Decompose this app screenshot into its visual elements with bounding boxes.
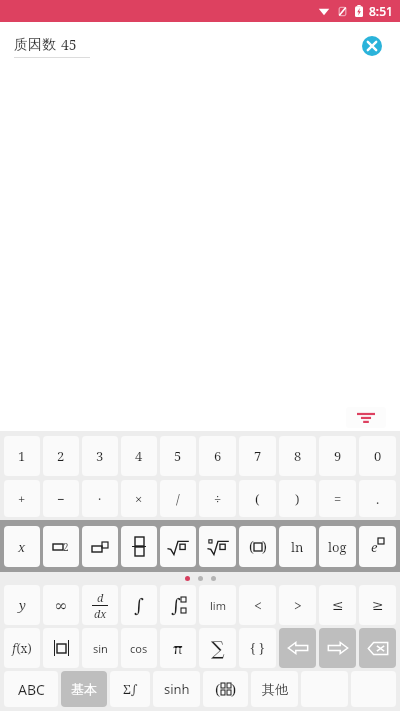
button[interactable]: < (239, 585, 276, 625)
button[interactable]: 其他 (251, 671, 298, 707)
staticText: 0 (374, 447, 382, 465)
button[interactable]: Close (355, 29, 389, 63)
button[interactable]: + (4, 480, 40, 517)
button[interactable]: ∫ (121, 585, 157, 625)
staticText: ≥ (372, 597, 384, 613)
button[interactable]: ÷ (199, 480, 236, 517)
staticText: 45 (61, 35, 77, 54)
staticText: · (98, 490, 102, 508)
button[interactable] (82, 526, 118, 567)
staticText: 2 (63, 540, 69, 554)
button[interactable] (43, 628, 79, 668)
button[interactable]: Σ∫ (110, 671, 150, 707)
staticText: dx (94, 606, 107, 621)
staticText: − (57, 490, 65, 508)
staticText: 𝑓(x) (12, 640, 32, 656)
button[interactable]: ( (203, 671, 248, 707)
staticText: . (376, 490, 380, 508)
button[interactable]: x (4, 526, 40, 567)
staticText: 2 (57, 447, 65, 465)
button[interactable]: { } (239, 628, 276, 668)
button[interactable]: 𝑓(x) (4, 628, 40, 668)
button[interactable]: π (160, 628, 196, 668)
staticText: ( (255, 490, 260, 508)
button[interactable]: lim (199, 585, 236, 625)
button[interactable]: 1 (4, 436, 40, 476)
button[interactable]: 3 (82, 436, 118, 476)
button[interactable]: Move right (319, 628, 356, 668)
button[interactable]: 6 (199, 436, 236, 476)
staticText: { } (250, 639, 265, 657)
staticText: sinh (164, 680, 190, 698)
staticText: ∫ (134, 594, 144, 616)
button[interactable]: sinh (153, 671, 200, 707)
staticText: ∫ (171, 594, 181, 616)
staticText: 1 (18, 447, 26, 465)
staticText: > (294, 596, 302, 615)
button[interactable]: 8 (279, 436, 316, 476)
button[interactable]: ∞ (43, 585, 79, 625)
button[interactable]: ∑ (199, 628, 236, 668)
button[interactable]: ) (279, 480, 316, 517)
staticText: sin (93, 641, 108, 656)
button[interactable]: 5 (160, 436, 196, 476)
staticText: / (176, 490, 180, 508)
staticText: ∞ (54, 596, 68, 615)
staticText: x (18, 538, 26, 556)
staticText: ( (249, 537, 254, 556)
button[interactable]: 2 (43, 436, 79, 476)
button[interactable]: y (4, 585, 40, 625)
staticText: ABC (18, 680, 45, 699)
staticText: ) (231, 679, 237, 699)
button[interactable]: e (359, 526, 396, 567)
button[interactable]: cos (121, 628, 157, 668)
button[interactable]: log (319, 526, 356, 567)
staticText: ∑ (211, 637, 225, 659)
button[interactable] (199, 526, 236, 567)
button[interactable] (160, 526, 196, 567)
button[interactable]: ABC (4, 671, 58, 707)
button[interactable]: Backspace (359, 628, 396, 668)
staticText: ) (262, 537, 267, 556)
staticText: = (334, 490, 342, 508)
button[interactable] (121, 526, 157, 567)
button[interactable]: Move left (279, 628, 316, 668)
staticText: ln (291, 538, 304, 556)
button[interactable]: d (82, 585, 118, 625)
button[interactable]: Filter (346, 407, 386, 428)
button[interactable]: 基本 (61, 671, 107, 707)
staticText: π (173, 638, 183, 658)
button[interactable]: − (43, 480, 79, 517)
button[interactable]: ≤ (319, 585, 356, 625)
button[interactable]: 0 (359, 436, 396, 476)
button[interactable]: 7 (239, 436, 276, 476)
staticText: 3 (96, 447, 104, 465)
button[interactable]: = (319, 480, 356, 517)
button[interactable]: / (160, 480, 196, 517)
staticText: 4 (135, 447, 143, 465)
button[interactable]: 9 (319, 436, 356, 476)
button[interactable]: ≥ (359, 585, 396, 625)
staticText: ( (215, 679, 221, 699)
staticText: 基本 (71, 681, 97, 697)
staticText: Σ∫ (123, 680, 138, 698)
button[interactable]: ( (239, 480, 276, 517)
button[interactable]: 2 (43, 526, 79, 567)
button[interactable]: 4 (121, 436, 157, 476)
button[interactable]: ( (239, 526, 276, 567)
staticText: < (254, 596, 262, 615)
button[interactable]: sin (82, 628, 118, 668)
button[interactable]: ln (279, 526, 316, 567)
button[interactable]: > (279, 585, 316, 625)
button[interactable]: · (82, 480, 118, 517)
staticText: 6 (214, 447, 222, 465)
staticText: 9 (334, 447, 342, 465)
button[interactable]: ∫ (160, 585, 196, 625)
staticText: × (135, 490, 143, 508)
button[interactable]: × (121, 480, 157, 517)
staticText: ≤ (332, 597, 344, 613)
button[interactable]: . (359, 480, 396, 517)
staticText: 8:51 (369, 3, 393, 19)
